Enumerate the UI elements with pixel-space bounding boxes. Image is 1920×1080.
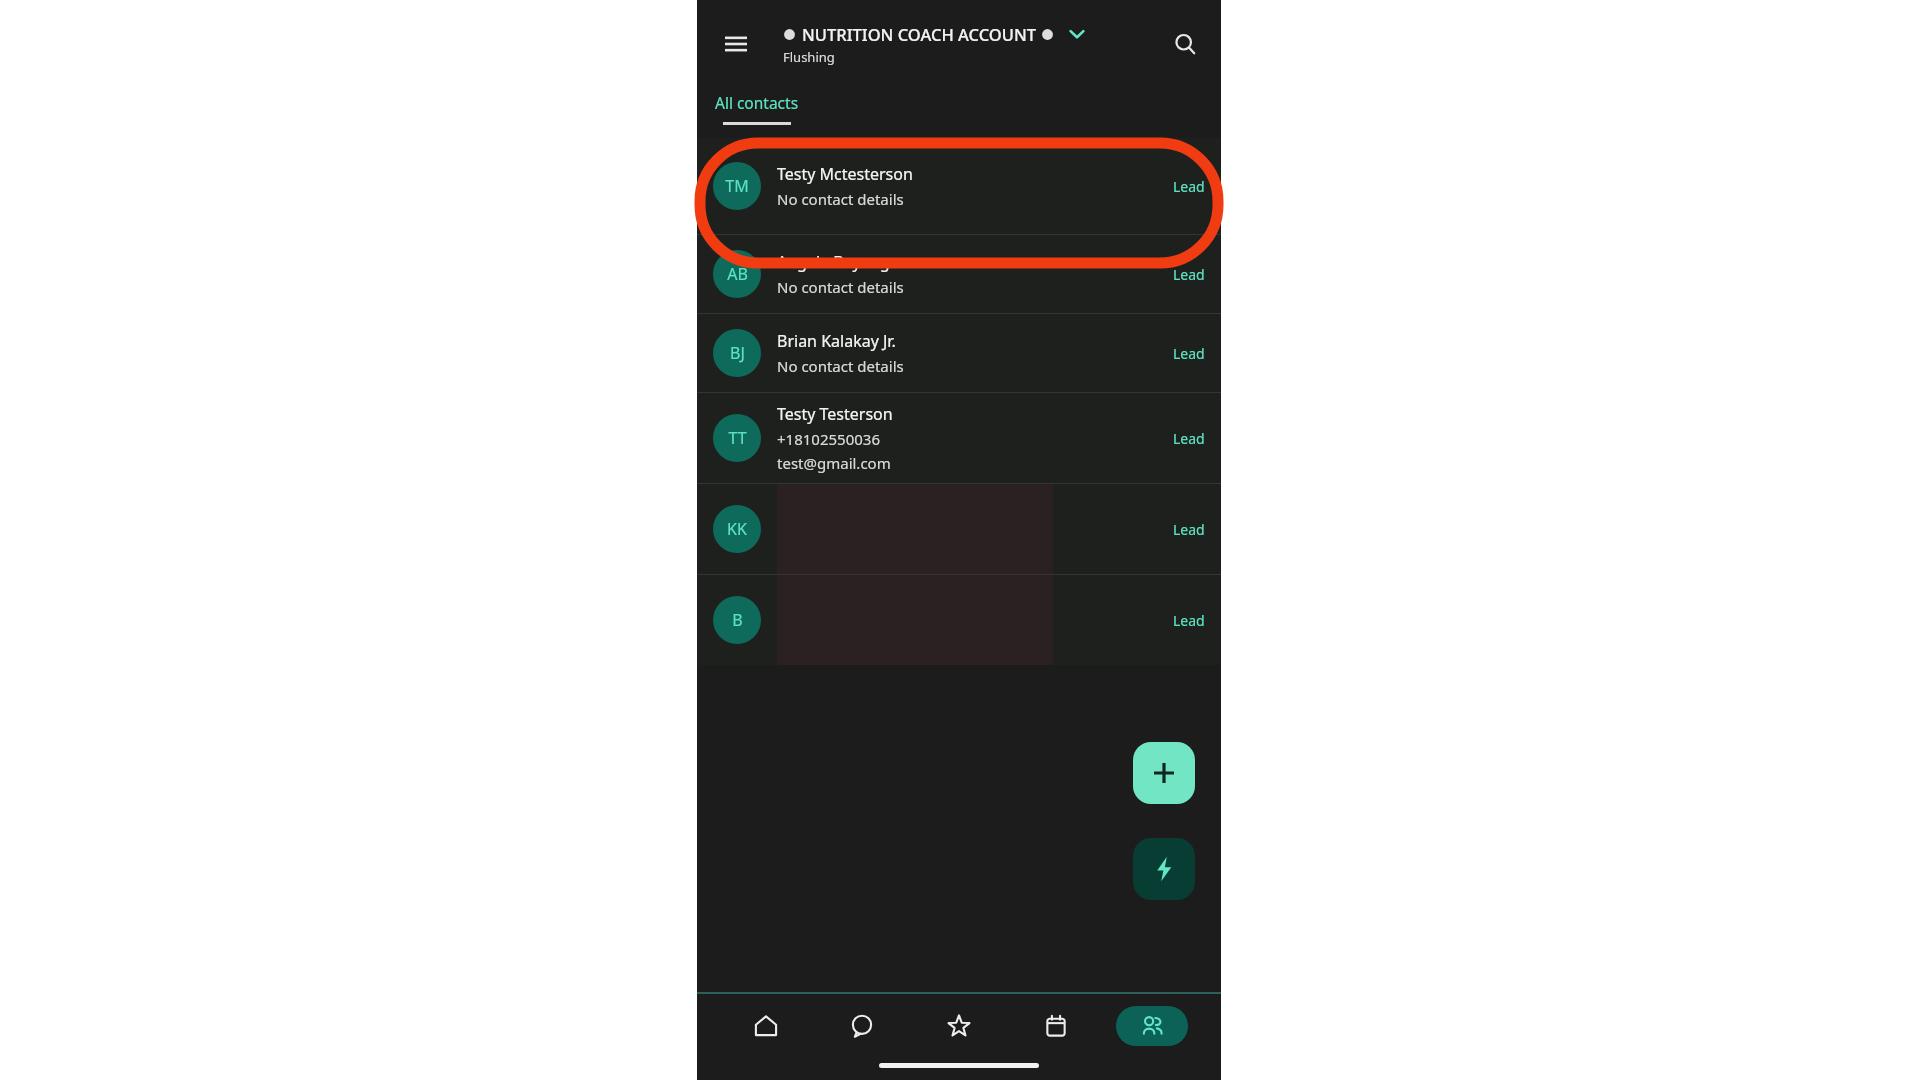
button[interactable]: Home — [730, 1006, 802, 1046]
button[interactable]: Search — [1163, 22, 1207, 66]
button[interactable]: All contacts — [713, 88, 801, 129]
button[interactable]: Calendar — [1020, 1006, 1092, 1046]
staticText: BJ — [730, 342, 745, 364]
staticText: Flushing — [783, 48, 835, 66]
staticText: test@gmail.com — [777, 453, 891, 473]
staticText: Lead — [1173, 265, 1205, 284]
button[interactable]: B — [697, 575, 1221, 665]
staticText: No contact details — [777, 189, 904, 209]
button[interactable]: Favorites — [923, 1006, 995, 1046]
button[interactable]: Switch account — [1066, 23, 1088, 45]
staticText: NUTRITION COACH ACCOUNT — [802, 23, 1036, 45]
button[interactable]: Add contact — [1133, 742, 1195, 804]
button[interactable]: Contacts — [1116, 1006, 1188, 1046]
staticText: No contact details — [777, 356, 904, 376]
staticText: Lead — [1173, 177, 1205, 196]
staticText: Brian Kalakay Jr. — [777, 330, 896, 352]
staticText: No contact details — [777, 277, 904, 297]
button[interactable]: Quick actions — [1133, 838, 1195, 900]
button[interactable]: BJ — [697, 314, 1221, 392]
staticText: All contacts — [715, 92, 799, 113]
button[interactable]: KK — [697, 484, 1221, 574]
button[interactable]: TT — [697, 393, 1221, 483]
staticText: Lead — [1173, 611, 1205, 630]
staticText: Testy Testerson — [777, 403, 893, 425]
staticText: KK — [727, 518, 747, 540]
staticText: Testy Mctesterson — [777, 163, 913, 185]
staticText: TM — [725, 175, 749, 197]
staticText: Lead — [1173, 429, 1205, 448]
staticText: +18102550036 — [777, 429, 880, 449]
staticText: Angela Bayang — [777, 251, 890, 273]
button[interactable]: AB — [697, 235, 1221, 313]
button[interactable]: Messages — [826, 1006, 898, 1046]
staticText: Lead — [1173, 520, 1205, 539]
button[interactable]: Menu — [714, 22, 758, 66]
staticText: AB — [727, 263, 748, 285]
staticText: Lead — [1173, 344, 1205, 363]
staticText: TT — [728, 427, 747, 449]
staticText: B — [732, 609, 743, 631]
button[interactable]: TM — [697, 138, 1221, 234]
